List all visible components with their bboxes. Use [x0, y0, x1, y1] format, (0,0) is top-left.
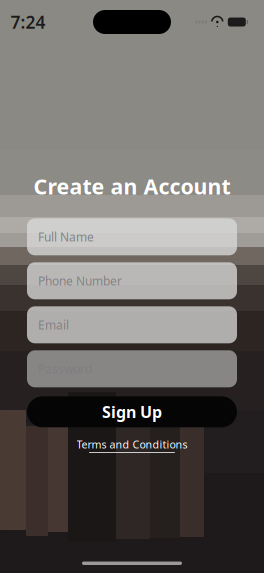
button[interactable]: Full Name — [27, 218, 237, 255]
button[interactable]: Password — [27, 350, 237, 387]
button[interactable]: Email — [27, 306, 237, 343]
button[interactable]: Phone Number — [27, 262, 237, 299]
staticText: 7:24 — [10, 10, 45, 33]
staticText: Terms and Conditions — [76, 437, 187, 451]
staticText: Create an Account — [33, 172, 230, 200]
staticText: Sign Up — [102, 401, 162, 422]
staticText: Full Name — [38, 229, 94, 245]
button[interactable]: Terms and Conditions — [70, 435, 193, 455]
button[interactable]: Sign Up — [27, 396, 237, 427]
staticText: Email — [38, 317, 69, 333]
staticText: Phone Number — [38, 273, 122, 289]
